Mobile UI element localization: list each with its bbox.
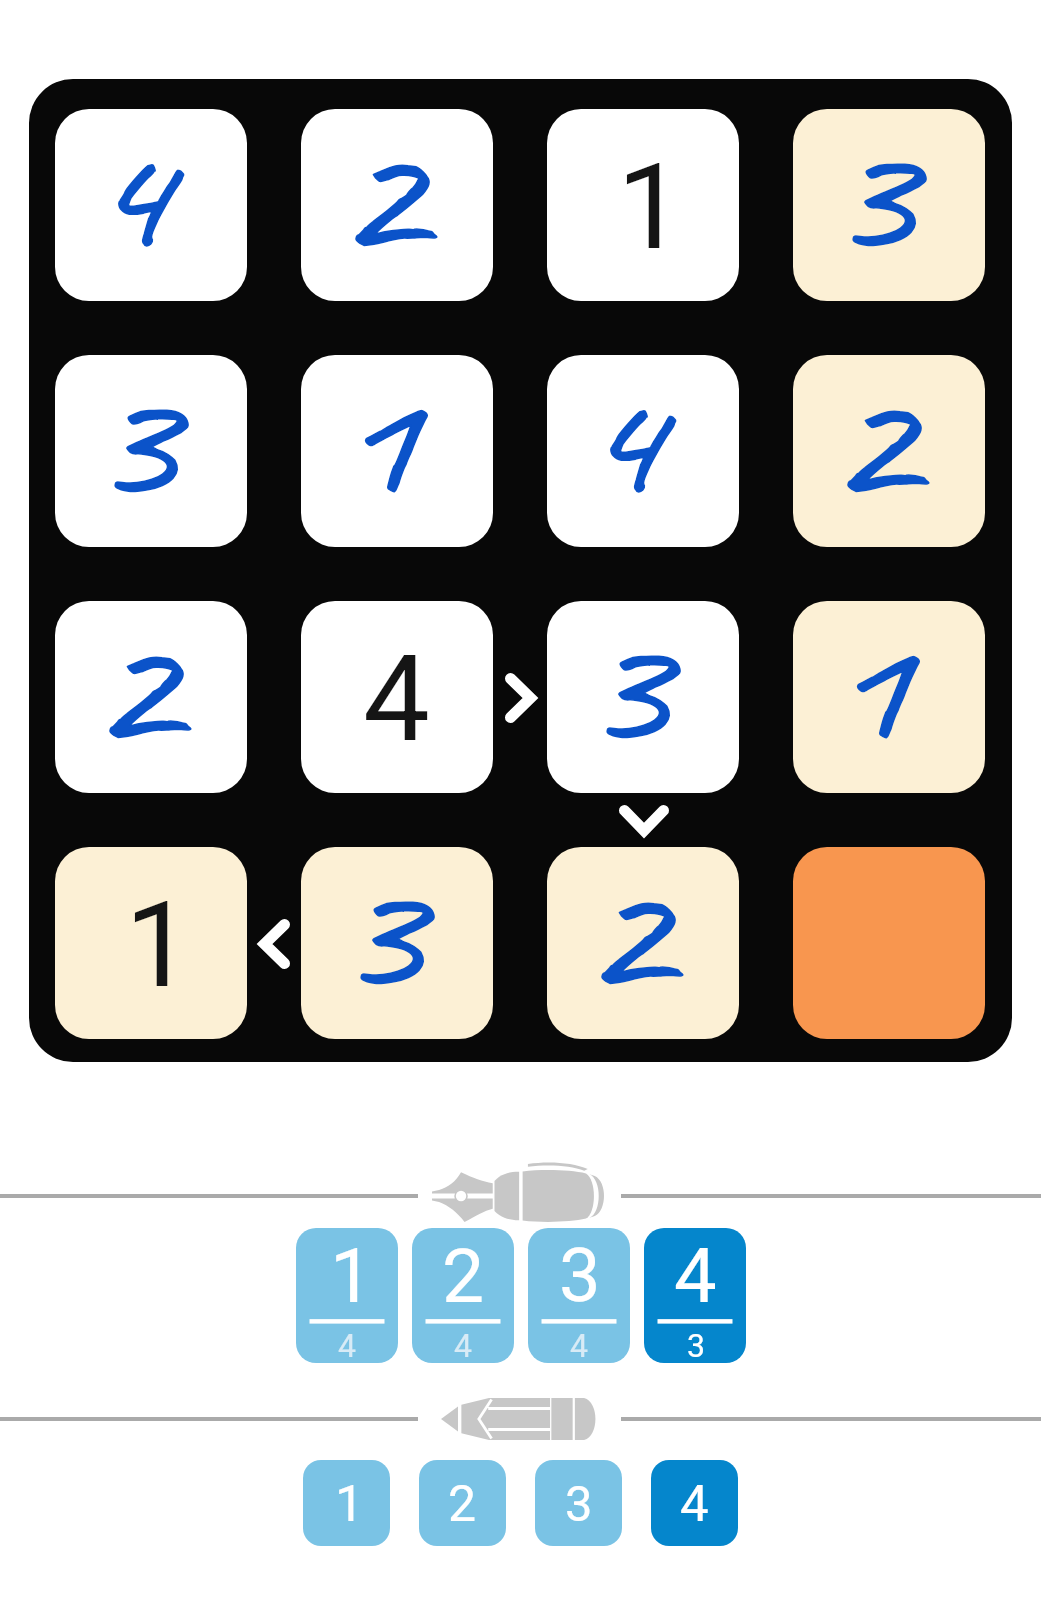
- button[interactable]: Cell row 3 column 4, 1: [793, 601, 985, 793]
- button[interactable]: Pencil mode: [441, 1398, 600, 1440]
- button[interactable]: Note 1: [303, 1460, 390, 1546]
- button[interactable]: Write 4, 3 left: [644, 1228, 746, 1363]
- button[interactable]: Note 4: [651, 1460, 738, 1546]
- button[interactable]: Cell row 3 column 3, 3: [547, 601, 739, 793]
- button[interactable]: Cell row 4 column 2, 3: [301, 847, 493, 1039]
- button[interactable]: Cell row 1 column 1, 4: [55, 109, 247, 301]
- button[interactable]: Note 2: [419, 1460, 506, 1546]
- button[interactable]: Pen mode: [432, 1170, 608, 1222]
- button[interactable]: Cell row 2 column 4, 2: [793, 355, 985, 547]
- button[interactable]: Cell row 1 column 4, 3: [793, 109, 985, 301]
- button[interactable]: Cell row 2 column 3, 4: [547, 355, 739, 547]
- button[interactable]: Cell row 1 column 3, 1: [547, 109, 739, 301]
- button[interactable]: Empty cell row 4 column 4: [793, 847, 985, 1039]
- button[interactable]: Write 1, 4 left: [296, 1228, 398, 1363]
- button[interactable]: Cell row 4 column 3, 2: [547, 847, 739, 1039]
- button[interactable]: Cell row 2 column 1, 3: [55, 355, 247, 547]
- button[interactable]: Write 2, 4 left: [412, 1228, 514, 1363]
- button[interactable]: Cell row 1 column 2, 2: [301, 109, 493, 301]
- button[interactable]: Write 3, 4 left: [528, 1228, 630, 1363]
- button[interactable]: Cell row 2 column 2, 1: [301, 355, 493, 547]
- button[interactable]: Cell row 4 column 1, 1: [55, 847, 247, 1039]
- button[interactable]: Note 3: [535, 1460, 622, 1546]
- button[interactable]: Cell row 3 column 2, 4: [301, 601, 493, 793]
- button[interactable]: Cell row 3 column 1, 2: [55, 601, 247, 793]
